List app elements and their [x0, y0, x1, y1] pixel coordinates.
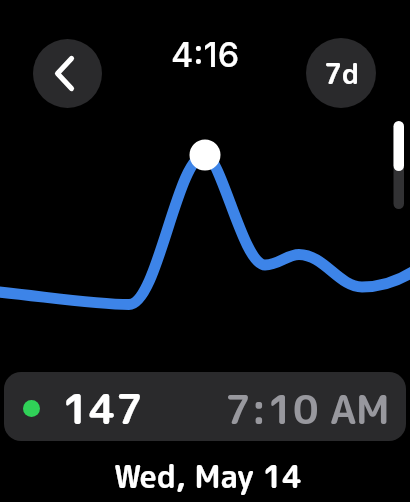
- button[interactable]: [33, 39, 102, 108]
- staticText: 4:16: [171, 34, 240, 72]
- button[interactable]: 147: [4, 372, 406, 441]
- staticText: 7:10 AM: [225, 381, 390, 437]
- staticText: 147: [62, 379, 143, 438]
- staticText: Wed, May 14: [114, 455, 303, 495]
- button[interactable]: 7d: [306, 38, 376, 108]
- staticText: 7d: [324, 54, 359, 93]
